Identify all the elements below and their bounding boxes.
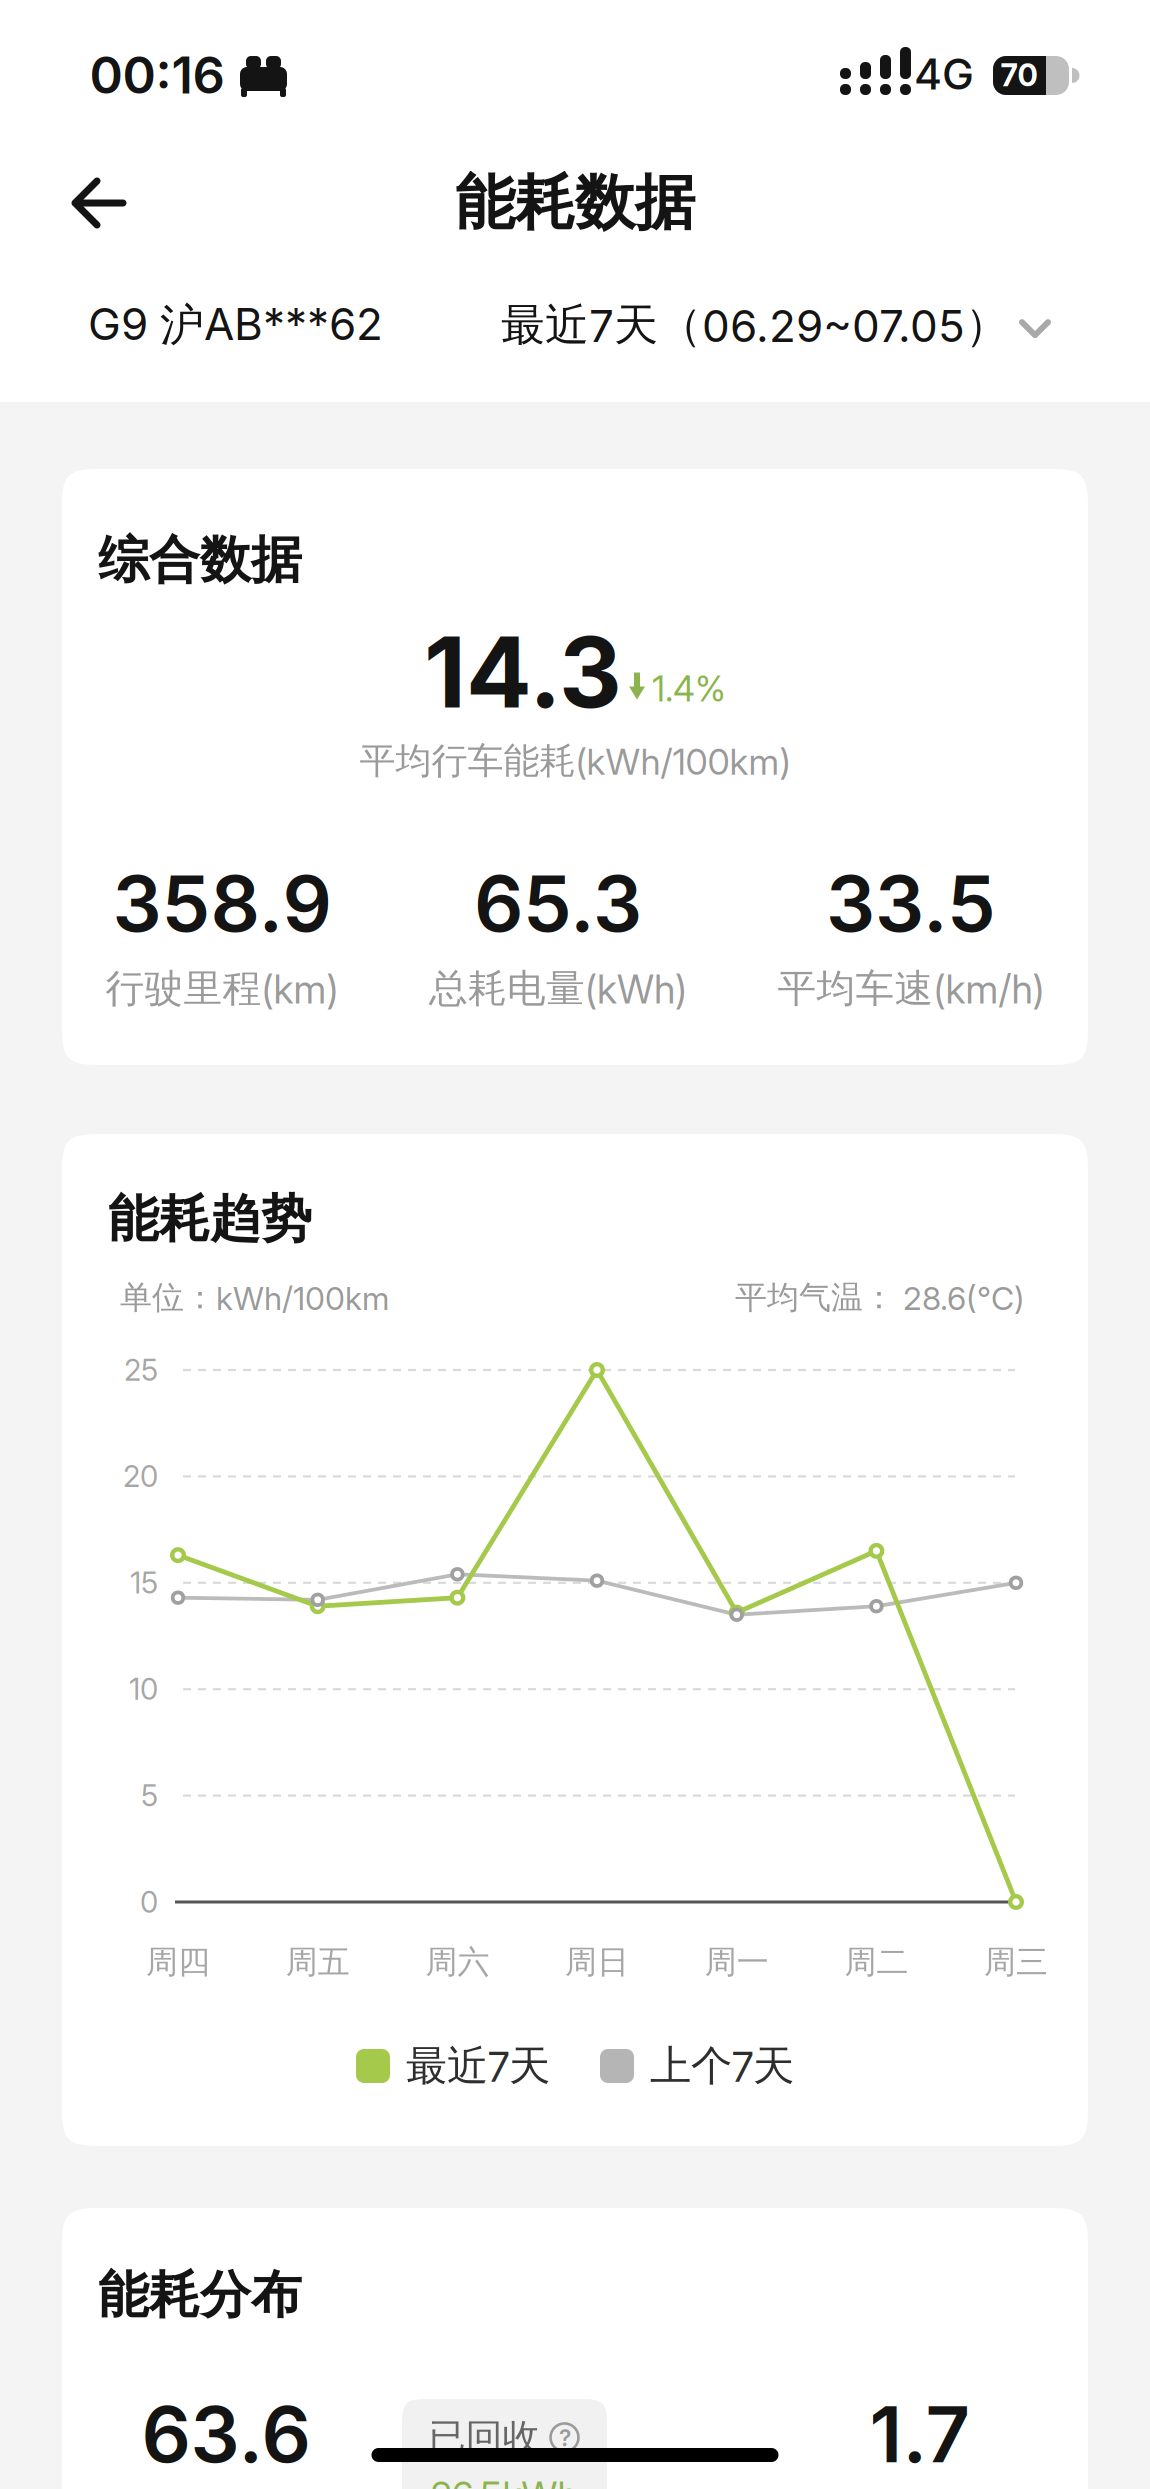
staticText: 10 <box>129 1672 158 1706</box>
staticText: 周三 <box>984 1942 1048 1982</box>
staticText: 0 <box>140 1885 158 1919</box>
staticText: 上个7天 <box>650 2041 794 2091</box>
button[interactable]: G9 沪AB***62 <box>88 298 383 352</box>
staticText: 25 <box>124 1353 158 1387</box>
staticText: 平均行车能耗(kWh/100km) <box>359 739 790 783</box>
button[interactable]: 已回收 <box>402 2399 607 2489</box>
button[interactable]: 最近7天（06.29~07.05） <box>501 298 1051 352</box>
staticText: 能耗分布 <box>98 2264 302 2326</box>
staticText: 65.3 <box>474 858 642 949</box>
staticText: 平均车速(km/h) <box>777 965 1044 1012</box>
staticText: 70 <box>1000 57 1037 93</box>
staticText: 14.3 <box>424 615 622 729</box>
staticText: 行驶里程(km) <box>105 965 338 1012</box>
staticText: 周二 <box>844 1942 908 1982</box>
staticText: 4G <box>914 49 974 99</box>
staticText: 33.5 <box>826 858 996 949</box>
staticText: 能耗数据 <box>455 166 695 240</box>
staticText: 单位：kWh/100km <box>120 1278 389 1317</box>
staticText: 26.5kWh <box>430 2473 578 2489</box>
staticText: 能耗趋势 <box>108 1188 312 1250</box>
staticText: 1.7 <box>869 2388 970 2480</box>
staticText: 20 <box>123 1459 158 1494</box>
staticText: 周日 <box>565 1942 629 1982</box>
staticText: 最近7天 <box>406 2041 550 2091</box>
staticText: 周一 <box>705 1942 769 1982</box>
staticText: 周四 <box>146 1942 210 1982</box>
staticText: 最近7天（06.29~07.05） <box>501 298 1009 352</box>
button[interactable] <box>68 173 130 233</box>
staticText: 1.4% <box>652 669 726 709</box>
staticText: 总耗电量(kWh) <box>429 965 687 1012</box>
staticText: 周六 <box>425 1942 489 1982</box>
staticText: 00:16 <box>89 45 224 105</box>
staticText: 周五 <box>286 1942 350 1982</box>
staticText: 15 <box>130 1565 158 1600</box>
staticText: 综合数据 <box>98 529 302 591</box>
staticText: 已回收 <box>428 2415 539 2461</box>
staticText: G9 沪AB***62 <box>88 298 383 352</box>
staticText: 358.9 <box>112 858 331 949</box>
staticText: ? <box>559 2425 571 2451</box>
staticText: 平均气温： 28.6(°C) <box>735 1278 1025 1317</box>
staticText: 5 <box>141 1778 158 1813</box>
staticText: 63.6 <box>141 2388 310 2480</box>
